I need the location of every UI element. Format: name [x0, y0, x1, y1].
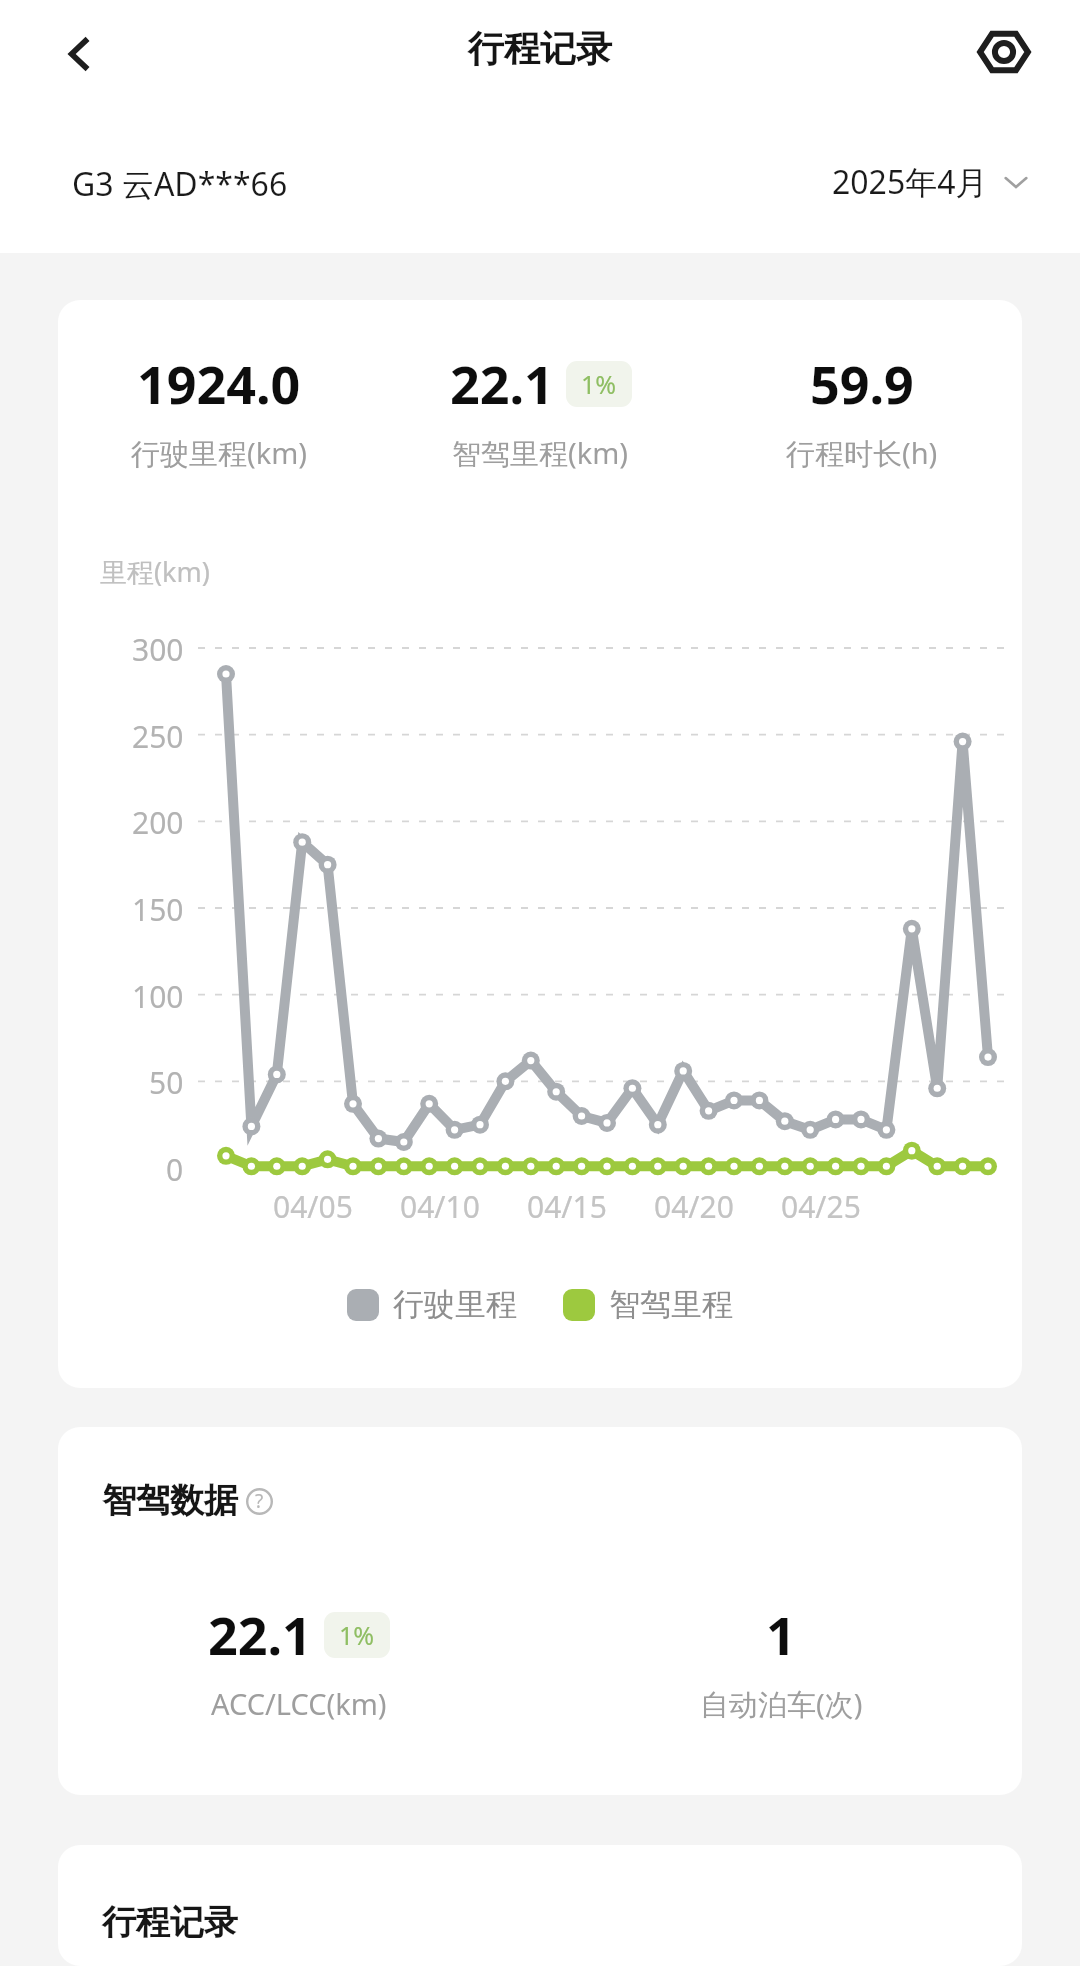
staticText: 行驶里程(km) [131, 433, 308, 473]
staticText: 里程(km) [100, 553, 210, 590]
staticText: 300 [132, 629, 184, 670]
staticText: 50 [149, 1062, 184, 1103]
button[interactable]: 行驶里程 [347, 1285, 517, 1324]
button[interactable]: 智驾里程 [563, 1285, 733, 1324]
other: Help [244, 1486, 274, 1516]
staticText: 250 [132, 716, 184, 757]
staticText: 0 [166, 1149, 184, 1190]
staticText: 150 [132, 889, 184, 930]
staticText: 22.1 [450, 348, 554, 419]
staticText: 04/25 [781, 1186, 861, 1227]
staticText: 智驾里程(km) [452, 433, 629, 473]
staticText: 智驾里程 [609, 1285, 733, 1324]
staticText: 04/05 [273, 1186, 353, 1227]
button[interactable]: 智驾数据 [102, 1479, 274, 1522]
staticText: 22.1 [208, 1599, 312, 1670]
staticText: 04/15 [527, 1186, 607, 1227]
staticText: 59.9 [810, 348, 914, 419]
staticText: 行程记录 [102, 1901, 238, 1944]
staticText: 行程时长(h) [786, 433, 938, 473]
staticText: ACC/LCC(km) [211, 1684, 387, 1723]
staticText: 1924.0 [137, 348, 301, 419]
staticText: ? [255, 1488, 264, 1514]
staticText: 行程记录 [0, 26, 1080, 71]
staticText: 2025年4月 [832, 160, 988, 204]
staticText: 1% [581, 367, 617, 401]
staticText: 自动泊车(次) [700, 1684, 863, 1724]
staticText: 04/20 [654, 1186, 734, 1227]
staticText: 智驾数据 [102, 1479, 238, 1522]
staticText: 200 [132, 802, 184, 843]
staticText: G3 云AD***66 [72, 162, 288, 206]
button[interactable]: Back [44, 18, 116, 90]
staticText: 1% [339, 1618, 375, 1652]
staticText: 100 [132, 976, 184, 1017]
staticText: 04/10 [400, 1186, 480, 1227]
staticText: 1 [766, 1599, 796, 1670]
staticText: 行驶里程 [393, 1285, 517, 1324]
button[interactable]: Settings [966, 14, 1042, 90]
button[interactable]: 2025年4月 [832, 160, 1030, 204]
